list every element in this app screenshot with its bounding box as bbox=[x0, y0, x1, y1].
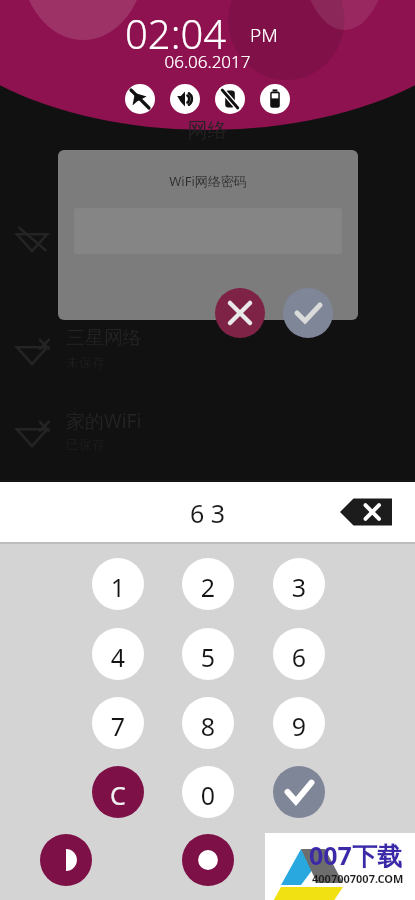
staticText: 4 bbox=[92, 640, 144, 680]
button[interactable]: Confirm bbox=[283, 288, 333, 338]
button[interactable]: Cancel bbox=[215, 288, 265, 338]
button[interactable]: Backspace bbox=[340, 495, 392, 529]
staticText: 9 bbox=[273, 709, 325, 749]
button[interactable] bbox=[0, 205, 415, 277]
staticText: 1 bbox=[92, 570, 144, 610]
staticText: PM bbox=[250, 22, 278, 48]
button[interactable]: Contrast bbox=[40, 834, 92, 886]
staticText: C bbox=[92, 778, 144, 818]
button[interactable]: 三星网络 bbox=[0, 318, 415, 390]
button[interactable]: 3 bbox=[273, 558, 325, 610]
staticText: 7 bbox=[92, 709, 144, 749]
staticText: 3 bbox=[273, 570, 325, 610]
staticText: 8 bbox=[182, 709, 234, 749]
staticText: 已保存 bbox=[66, 436, 105, 452]
button[interactable]: Options bbox=[324, 834, 376, 886]
staticText: 007下载 bbox=[309, 838, 402, 872]
staticText: 4007007007.COM bbox=[312, 871, 404, 886]
staticText: 三星网络 bbox=[66, 326, 142, 350]
staticText: 家的WiFi bbox=[66, 408, 142, 434]
button[interactable]: Silent bbox=[125, 84, 155, 114]
button[interactable]: Volume bbox=[170, 84, 200, 114]
staticText: 5 bbox=[182, 640, 234, 680]
staticText: 6 bbox=[273, 640, 325, 680]
button[interactable]: 7 bbox=[92, 697, 144, 749]
staticText: 2 bbox=[182, 570, 234, 610]
button[interactable]: Vibrate off bbox=[215, 84, 245, 114]
staticText: 网络 bbox=[0, 118, 415, 146]
button[interactable]: 6 bbox=[273, 628, 325, 680]
button[interactable]: 4 bbox=[92, 628, 144, 680]
button[interactable]: Brightness bbox=[182, 834, 234, 886]
button[interactable]: 9 bbox=[273, 697, 325, 749]
staticText: 未保存 bbox=[66, 354, 105, 370]
button[interactable]: 1 bbox=[92, 558, 144, 610]
staticText: 6 3 bbox=[0, 496, 415, 556]
button[interactable]: 8 bbox=[182, 697, 234, 749]
staticText: 02:04 bbox=[125, 6, 227, 60]
button[interactable]: 5 bbox=[182, 628, 234, 680]
button[interactable]: Battery bbox=[260, 84, 290, 114]
staticText: 06.06.2017 bbox=[0, 50, 415, 74]
staticText: 0 bbox=[182, 778, 234, 818]
button[interactable]: 2 bbox=[182, 558, 234, 610]
button[interactable]: 0 bbox=[182, 766, 234, 818]
staticText: WiFi网络密码 bbox=[58, 172, 358, 320]
button[interactable]: C bbox=[92, 766, 144, 818]
button[interactable]: Confirm bbox=[273, 766, 325, 818]
